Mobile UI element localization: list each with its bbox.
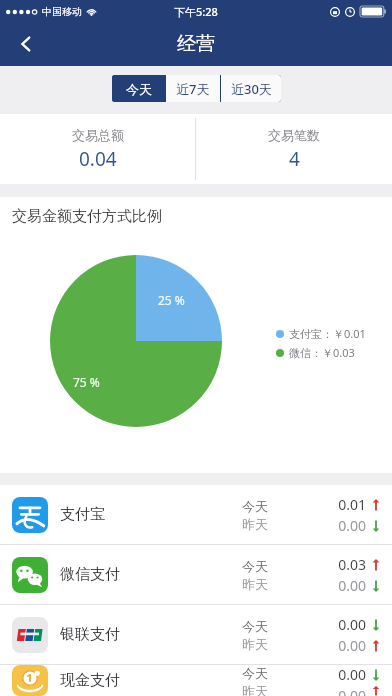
staticText: 微信支付: [60, 565, 120, 584]
staticText: 今天: [242, 665, 268, 681]
staticText: 今天: [242, 498, 268, 514]
staticText: 支付宝: [60, 505, 105, 524]
staticText: 经营: [177, 32, 215, 56]
staticText: 今天: [126, 81, 152, 97]
staticText: 25 %: [158, 292, 185, 308]
button[interactable]: 交易笔数: [196, 114, 392, 184]
staticText: 今天: [242, 558, 268, 574]
staticText: 0.00: [338, 686, 366, 696]
staticText: 昨天: [242, 683, 268, 696]
staticText: 银联支付: [60, 625, 120, 644]
staticText: 0.00: [338, 576, 366, 595]
staticText: 4: [289, 146, 300, 172]
staticText: 0.01: [338, 495, 366, 514]
staticText: 0.00: [338, 636, 366, 655]
staticText: 近30天: [231, 80, 272, 98]
staticText: 今天: [242, 618, 268, 634]
staticText: 昨天: [242, 516, 268, 532]
staticText: 近7天: [176, 80, 210, 98]
button[interactable]: 银联支付: [0, 605, 392, 664]
button[interactable]: 现金支付: [0, 665, 392, 696]
staticText: 0.04: [79, 146, 117, 172]
button[interactable]: 今天: [112, 75, 165, 102]
staticText: 75 %: [73, 374, 100, 390]
staticText: 现金支付: [60, 671, 120, 690]
button[interactable]: Back: [6, 24, 46, 64]
button[interactable]: 支付宝: [0, 485, 392, 544]
staticText: 微信：￥0.03: [289, 345, 355, 360]
staticText: 昨天: [242, 636, 268, 652]
button[interactable]: 微信支付: [0, 545, 392, 604]
staticText: 昨天: [242, 576, 268, 592]
staticText: 交易总额: [72, 127, 124, 143]
staticText: 中国移动: [42, 5, 82, 18]
button[interactable]: 近30天: [221, 75, 281, 102]
staticText: 0.00: [338, 615, 366, 634]
staticText: 0.00: [338, 665, 366, 684]
button[interactable]: 近7天: [166, 75, 220, 102]
staticText: 0.03: [338, 555, 366, 574]
staticText: 支付宝：￥0.01: [289, 326, 366, 341]
staticText: 交易笔数: [268, 127, 320, 143]
staticText: 0.00: [338, 516, 366, 535]
button[interactable]: 交易总额: [0, 114, 195, 184]
staticText: 交易金额支付方式比例: [12, 207, 162, 226]
staticText: 下午5:28: [174, 4, 218, 19]
